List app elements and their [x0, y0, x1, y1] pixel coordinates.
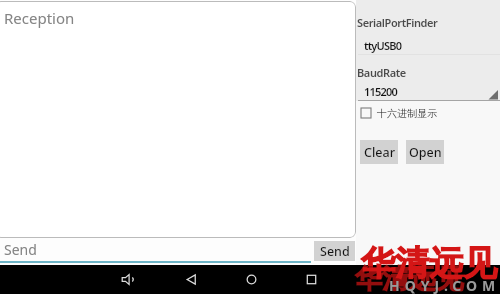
- staticText: 华清远见: [355, 262, 463, 294]
- button[interactable]: Home: [237, 265, 266, 294]
- button[interactable]: Send: [314, 241, 355, 261]
- button[interactable]: ttyUSB0: [358, 38, 500, 55]
- staticText: Send: [4, 240, 37, 259]
- button[interactable]: Recent apps: [297, 265, 326, 294]
- staticText: Clear: [364, 144, 395, 161]
- staticText: 115200: [364, 84, 397, 99]
- button[interactable]: Reception: [0, 1, 356, 238]
- staticText: 十六进制显示: [377, 107, 437, 120]
- staticText: Reception: [4, 8, 75, 28]
- staticText: Send: [320, 243, 350, 260]
- button[interactable]: 十六进制显示: [361, 105, 437, 121]
- button[interactable]: Volume: [114, 265, 143, 294]
- button[interactable]: Open: [406, 140, 444, 164]
- button[interactable]: 115200: [358, 84, 500, 101]
- staticText: HQYJ.COM: [389, 276, 500, 294]
- staticText: BaudRate: [357, 65, 406, 80]
- staticText: Open: [409, 144, 442, 161]
- staticText: SerialPortFinder: [357, 15, 438, 30]
- button[interactable]: Clear: [360, 140, 398, 164]
- button[interactable]: Back: [177, 265, 206, 294]
- button[interactable]: Send: [0, 239, 311, 263]
- staticText: ttyUSB0: [364, 38, 402, 53]
- staticText: 华清远见: [361, 242, 497, 285]
